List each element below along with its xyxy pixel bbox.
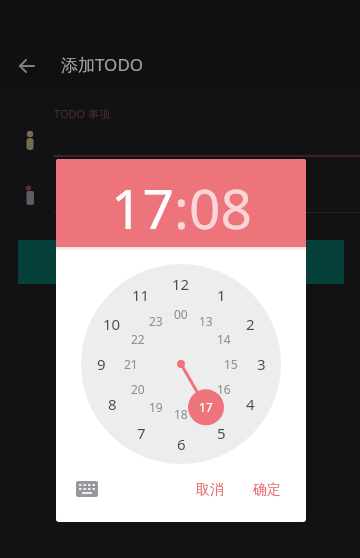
button[interactable]: 确定: [239, 476, 295, 504]
staticText: 17: [111, 170, 174, 245]
staticText: 16: [217, 381, 231, 397]
staticText: 18: [174, 406, 188, 422]
staticText: 3: [257, 354, 266, 374]
staticText: 4: [246, 394, 255, 414]
staticText: 00: [174, 306, 188, 322]
staticText: 17: [199, 399, 213, 415]
staticText: 8: [108, 394, 117, 414]
staticText: 2: [246, 314, 255, 334]
staticText: 10: [103, 314, 121, 334]
staticText: 12: [172, 274, 190, 294]
staticText: 添加TODO: [61, 53, 144, 76]
staticText: 13: [199, 313, 213, 329]
staticText: 取消: [196, 481, 224, 499]
staticText: 确定: [253, 481, 281, 499]
button[interactable]: [74, 476, 100, 502]
staticText: 1: [217, 285, 226, 305]
staticText: 14: [217, 331, 231, 347]
button[interactable]: [14, 52, 42, 80]
button[interactable]: 取消: [182, 476, 238, 504]
staticText: 08: [189, 170, 252, 245]
staticText: 7: [137, 423, 146, 443]
staticText: 15: [224, 356, 238, 372]
button[interactable]: [18, 240, 344, 284]
staticText: 5: [217, 423, 226, 443]
staticText: 20: [131, 381, 145, 397]
staticText: 11: [132, 285, 150, 305]
staticText: 9: [97, 354, 106, 374]
staticText: 23: [149, 313, 163, 329]
staticText: 6: [177, 434, 186, 454]
staticText: :: [174, 170, 189, 245]
staticText: 19: [149, 399, 163, 415]
staticText: 22: [131, 331, 145, 347]
staticText: 21: [124, 356, 138, 372]
staticText: TODO 事项: [54, 106, 110, 121]
